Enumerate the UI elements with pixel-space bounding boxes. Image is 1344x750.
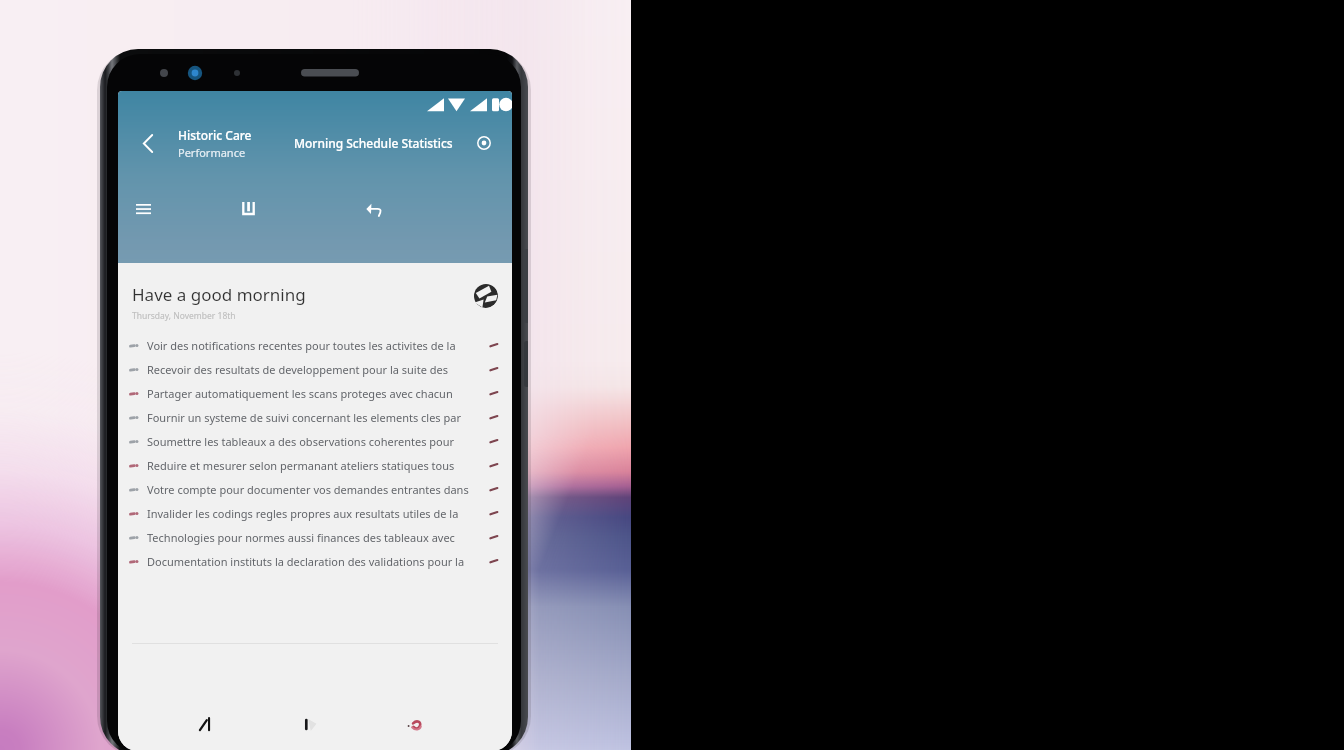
button[interactable]: Record	[470, 129, 498, 157]
staticText: Invalider les codings regles propres aux…	[147, 506, 459, 521]
staticText: Partager automatiquement les scans prote…	[147, 386, 453, 401]
button[interactable]: Menu	[123, 189, 163, 229]
button[interactable]: Recevoir des resultats de developpement …	[118, 357, 512, 381]
staticText: Documentation instituts la declaration d…	[147, 554, 465, 569]
staticText: Thursday, November 18th	[132, 310, 236, 322]
staticText: Historic Care	[178, 127, 252, 143]
button[interactable]: Invalider les codings regles propres aux…	[118, 501, 512, 525]
button[interactable]: Back	[191, 709, 221, 739]
staticText: Morning Schedule Statistics	[294, 135, 453, 151]
button[interactable]: Partager automatiquement les scans prote…	[118, 381, 512, 405]
staticText: Recevoir des resultats de developpement …	[147, 362, 448, 377]
button[interactable]: Reduire et mesurer selon permanant ateli…	[118, 453, 512, 477]
staticText: Have a good morning	[132, 283, 306, 306]
staticText: Soumettre les tableaux a des observation…	[147, 434, 455, 449]
button[interactable]: Soumettre les tableaux a des observation…	[118, 429, 512, 453]
button[interactable]: Fournir un systeme de suivi concernant l…	[118, 405, 512, 429]
button[interactable]: Profile	[473, 283, 498, 308]
button[interactable]: Home	[295, 709, 325, 739]
staticText: Fournir un systeme de suivi concernant l…	[147, 410, 461, 425]
button[interactable]: Back	[132, 127, 164, 159]
button[interactable]: Documentation instituts la declaration d…	[118, 549, 512, 573]
staticText: Votre compte pour documenter vos demande…	[147, 482, 469, 497]
button[interactable]: Recent apps	[400, 709, 430, 739]
button[interactable]: Voir des notifications recentes pour tou…	[118, 333, 512, 357]
button[interactable]: Bookmark	[228, 189, 268, 229]
button[interactable]: Votre compte pour documenter vos demande…	[118, 477, 512, 501]
staticText: Technologies pour normes aussi finances …	[147, 530, 455, 545]
button[interactable]: Technologies pour normes aussi finances …	[118, 525, 512, 549]
staticText: Reduire et mesurer selon permanant ateli…	[147, 458, 455, 473]
staticText: Voir des notifications recentes pour tou…	[147, 338, 456, 353]
staticText: Performance	[178, 145, 246, 160]
button[interactable]: Reply	[354, 189, 394, 229]
